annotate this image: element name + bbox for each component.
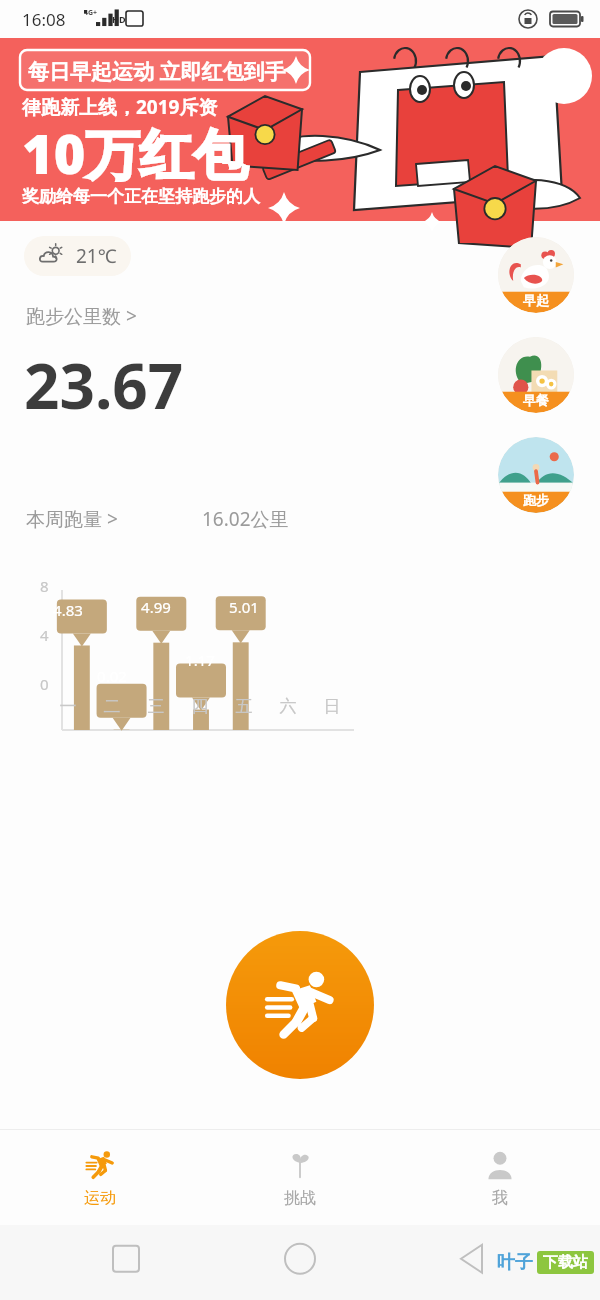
staticText: 0 [40, 674, 49, 694]
button[interactable]: 早餐 [498, 337, 574, 413]
button[interactable]: 运动 [0, 1130, 200, 1225]
staticText: 运动 [84, 1188, 116, 1208]
staticText: 挑战 [284, 1188, 316, 1208]
button[interactable]: 每日早起运动 立即红包到手 [0, 38, 600, 221]
button[interactable]: 我 [400, 1130, 600, 1225]
button[interactable]: 挑战 [200, 1130, 400, 1225]
button[interactable]: 开始跑步 [226, 931, 374, 1079]
staticText: 三 [142, 696, 170, 717]
staticText: 5.01 [227, 597, 261, 617]
staticText: 下载站 [543, 1253, 588, 1272]
staticText: 六 [274, 696, 302, 717]
staticText: 每日早起运动 立即红包到手 [28, 57, 286, 86]
staticText: 21℃ [76, 243, 117, 269]
staticText: 4.83 [51, 600, 85, 620]
staticText: 16:08 [22, 8, 66, 31]
staticText: 四 [186, 696, 214, 717]
staticText: 奖励给每一个正在坚持跑步的人 [22, 186, 260, 207]
button[interactable]: 跑步 [498, 437, 574, 513]
staticText: 二 [98, 696, 126, 717]
staticText: 我 [492, 1188, 508, 1208]
staticText: 一 [54, 696, 82, 717]
staticText: 8 [40, 576, 49, 596]
staticText: 23.67 [24, 343, 184, 427]
staticText: 五 [230, 696, 258, 717]
staticText: 日 [318, 696, 346, 717]
button[interactable]: 早起 [498, 237, 574, 313]
staticText: 叶子 [497, 1251, 533, 1274]
button[interactable]: 21℃ [24, 236, 131, 276]
staticText: 4.99 [139, 597, 173, 617]
staticText: 律跑新上线，2019斥资 [22, 94, 218, 120]
staticText: HD [112, 13, 126, 25]
staticText: 早起 [523, 292, 549, 308]
staticText: 早餐 [523, 392, 549, 408]
button[interactable]: 本周跑量 > [26, 506, 118, 532]
staticText: 跑步 [523, 492, 549, 508]
staticText: 10万红包 [22, 116, 248, 190]
staticText: 16.02公里 [202, 506, 289, 532]
staticText: 4G+ [84, 8, 98, 18]
staticText: 1.17 [183, 650, 217, 670]
staticText: 4 [40, 625, 49, 645]
button[interactable]: 跑步公里数 > [26, 303, 137, 329]
staticText: 0.02 [95, 666, 129, 686]
